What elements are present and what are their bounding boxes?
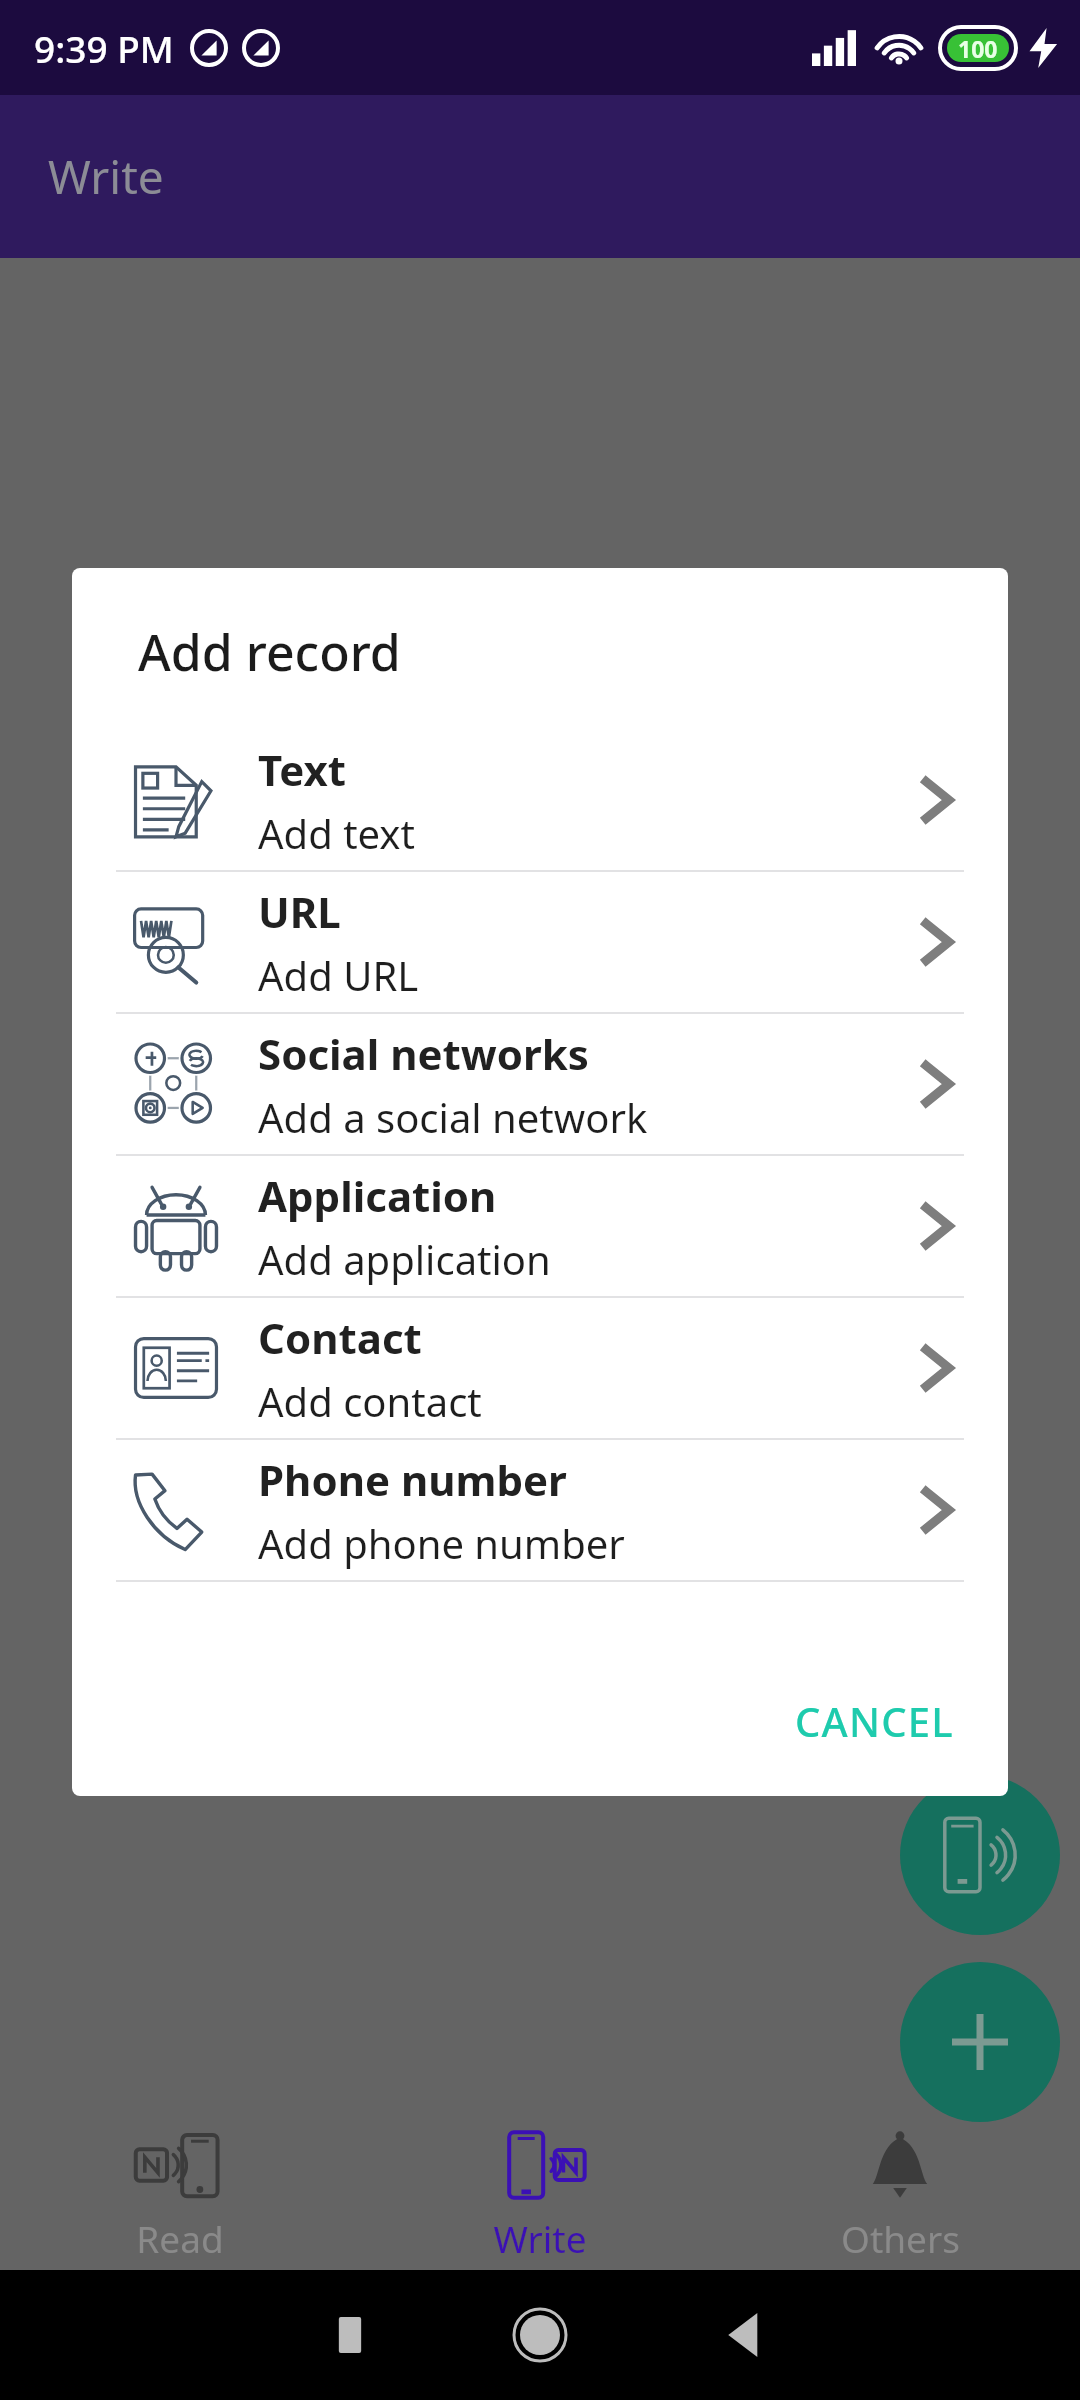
button[interactable]: Contact [72,1298,1008,1438]
button[interactable]: Home [485,2280,595,2390]
button[interactable]: URL [72,872,1008,1012]
staticText: Add URL [258,948,419,1002]
button[interactable]: Read [0,2124,360,2270]
staticText: Social networks [258,1025,589,1082]
button[interactable]: Social networks [72,1014,1008,1154]
button[interactable]: CANCEL [771,1676,978,1766]
staticText: Add contact [258,1374,482,1428]
staticText: Phone number [258,1451,567,1508]
staticText: CANCEL [795,1694,954,1748]
button[interactable]: Others [720,2124,1080,2270]
staticText: Write [48,145,164,208]
staticText: Add application [258,1232,551,1286]
staticText: 100 [958,33,998,64]
staticText: Others [841,2213,960,2263]
button[interactable]: Text [72,730,1008,870]
button[interactable]: Phone number [72,1440,1008,1580]
staticText: Contact [258,1309,422,1366]
staticText: Add text [258,806,415,860]
staticText: Application [258,1167,497,1224]
staticText: Write [493,2213,587,2263]
staticText: URL [258,883,341,940]
button[interactable]: Write [360,2124,720,2270]
button[interactable]: Add [900,1962,1060,2122]
button[interactable]: Write tag [900,1775,1060,1935]
staticText: Add record [138,618,401,686]
staticText: Read [136,2213,224,2263]
staticText: Text [258,741,347,798]
staticText: Add phone number [258,1516,625,1570]
button[interactable]: Application [72,1156,1008,1296]
button[interactable]: Back [695,2285,795,2385]
button[interactable]: Recent apps [300,2285,400,2385]
staticText: 9:39 PM [34,23,174,73]
staticText: Add a social network [258,1090,648,1144]
